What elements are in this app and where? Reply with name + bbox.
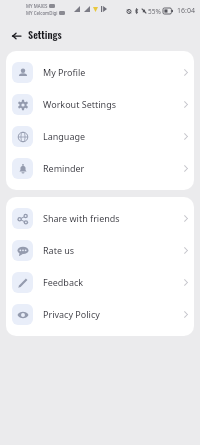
staticText: Rate us xyxy=(43,244,75,256)
staticText: Share with friends xyxy=(43,212,120,224)
staticText: Settings xyxy=(28,27,62,42)
staticText: My Profile xyxy=(43,66,86,78)
button[interactable]: Rate us xyxy=(6,234,194,266)
staticText: 16:04 xyxy=(177,6,195,16)
staticText: Reminder xyxy=(43,162,85,174)
staticText: Privacy Policy xyxy=(43,308,100,320)
staticText: Language xyxy=(43,130,86,142)
staticText: Feedback xyxy=(43,276,84,288)
staticText: 55% xyxy=(148,7,161,16)
button[interactable]: Privacy Policy xyxy=(6,298,194,330)
button[interactable]: Workout Settings xyxy=(6,88,194,120)
button[interactable]: Share with friends xyxy=(6,202,194,234)
button[interactable]: Reminder xyxy=(6,152,194,184)
button[interactable]: Feedback xyxy=(6,266,194,298)
button[interactable]: Language xyxy=(6,120,194,152)
button[interactable]: Back xyxy=(8,28,24,44)
staticText: MY MAXIS xyxy=(26,3,48,9)
button[interactable]: My Profile xyxy=(6,56,194,88)
staticText: MY CelcomDigi xyxy=(26,10,58,16)
staticText: Workout Settings xyxy=(43,98,116,110)
